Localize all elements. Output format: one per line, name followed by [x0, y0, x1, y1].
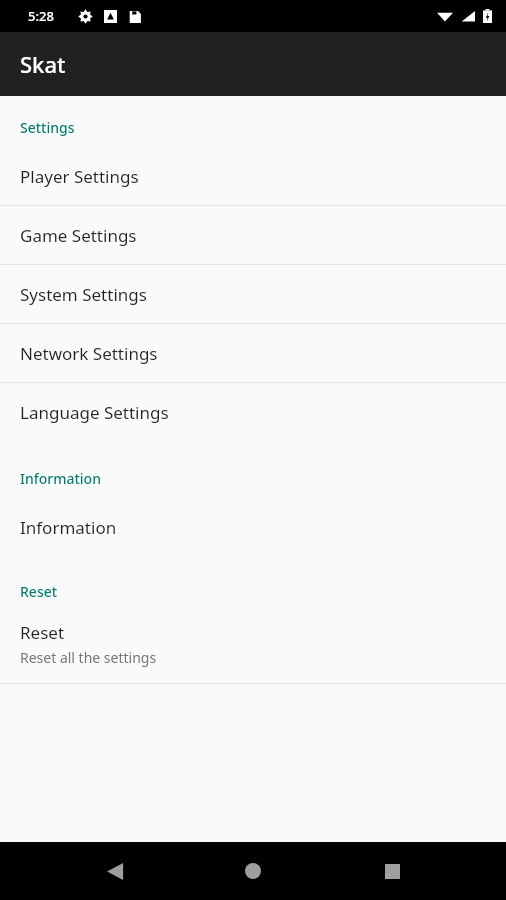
staticText: Player Settings: [20, 165, 139, 188]
button[interactable]: Recent apps: [368, 847, 416, 895]
staticText: Game Settings: [20, 224, 137, 247]
staticText: System Settings: [20, 283, 147, 306]
button[interactable]: Home: [229, 847, 277, 895]
staticText: Reset: [20, 621, 65, 644]
button[interactable]: Language Settings: [0, 383, 506, 441]
button[interactable]: Reset: [0, 609, 506, 683]
staticText: Language Settings: [20, 401, 169, 424]
button[interactable]: Player Settings: [0, 147, 506, 205]
staticText: Network Settings: [20, 342, 158, 365]
button[interactable]: Back: [91, 847, 139, 895]
staticText: Skat: [20, 49, 66, 79]
button[interactable]: System Settings: [0, 265, 506, 323]
staticText: Settings: [20, 118, 75, 137]
button[interactable]: Information: [0, 498, 506, 556]
button[interactable]: Game Settings: [0, 206, 506, 264]
staticText: 5:28: [28, 7, 54, 25]
button[interactable]: Network Settings: [0, 324, 506, 382]
staticText: Information: [20, 516, 117, 539]
staticText: Reset all the settings: [20, 648, 157, 667]
staticText: Information: [20, 469, 101, 488]
staticText: Reset: [20, 582, 58, 601]
